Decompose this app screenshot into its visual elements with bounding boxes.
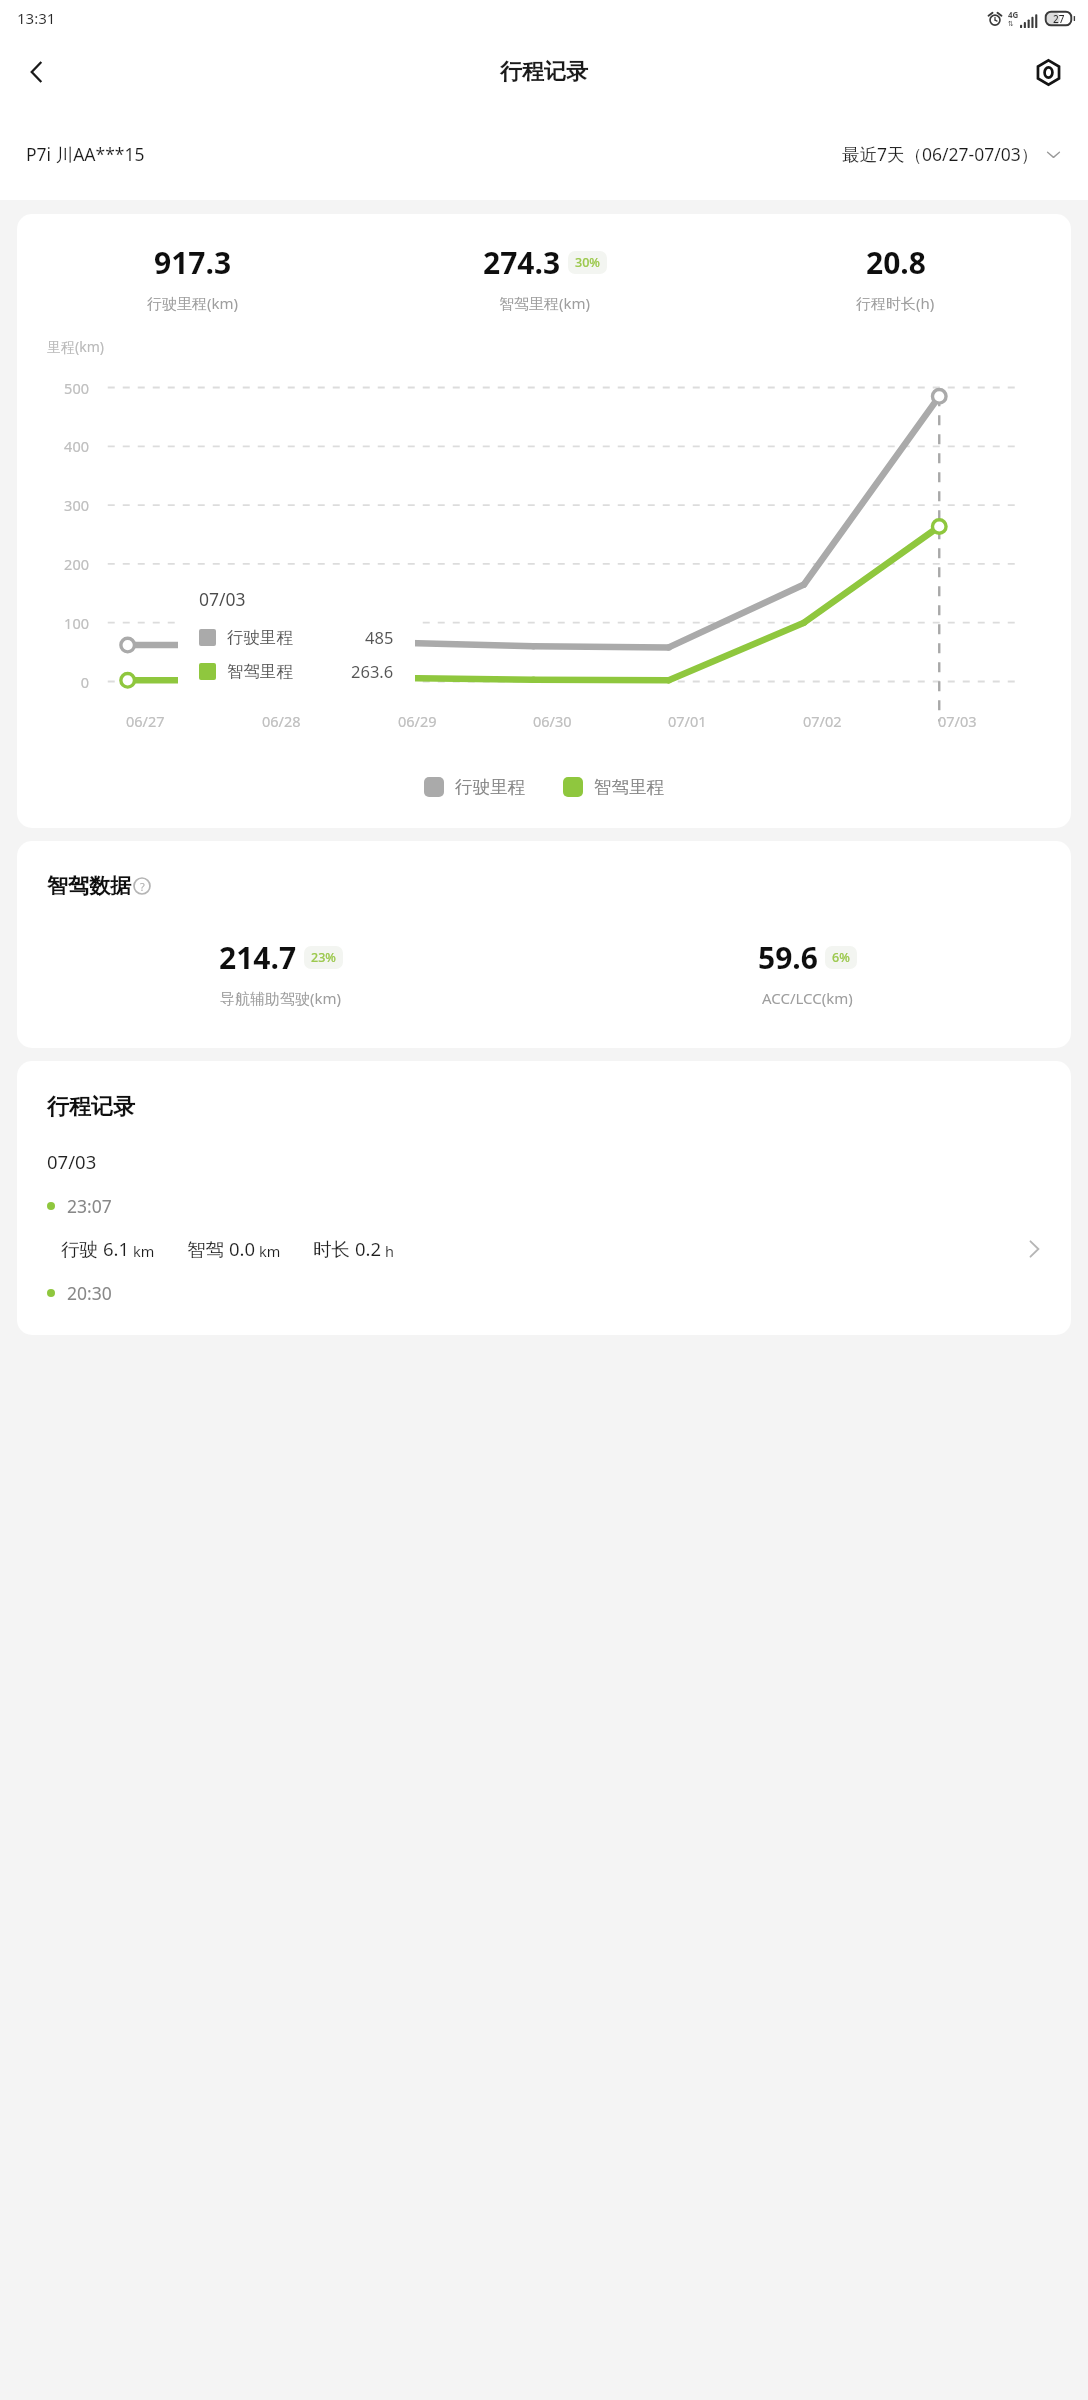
staticText: 20.8: [866, 242, 926, 283]
staticText: 500: [25, 378, 89, 398]
staticText: 07/02: [803, 711, 842, 731]
staticText: 06/30: [533, 711, 572, 731]
staticText: 300: [25, 495, 89, 515]
button[interactable]: Back: [8, 43, 66, 101]
staticText: 214.7: [219, 937, 297, 978]
staticText: 智驾里程(km): [499, 293, 591, 313]
staticText: 行程时长(h): [856, 293, 935, 313]
staticText: 485: [365, 626, 394, 648]
staticText: 07/03: [47, 1149, 97, 1174]
staticText: 274.3: [483, 242, 561, 283]
staticText: 智驾里程: [594, 776, 664, 798]
staticText: 27: [1053, 12, 1065, 26]
staticText: 6.1: [103, 1236, 130, 1261]
staticText: 13:31: [17, 8, 56, 28]
other: Alarm: [988, 12, 1002, 26]
staticText: 行驶里程: [455, 776, 525, 798]
staticText: 智驾数据: [47, 873, 131, 899]
staticText: 30%: [575, 254, 600, 271]
button[interactable]: 智驾里程: [563, 776, 664, 798]
staticText: 行程记录: [500, 58, 588, 86]
staticText: 200: [25, 554, 89, 574]
staticText: 06/28: [262, 711, 301, 731]
button[interactable]: 最近7天（06/27-07/03）: [842, 142, 1062, 166]
staticText: ACC/LCC(km): [762, 988, 853, 1008]
staticText: 23:07: [67, 1194, 112, 1218]
staticText: 行驶里程: [227, 627, 293, 648]
staticText: 400: [25, 436, 89, 456]
staticText: 0.2: [355, 1236, 382, 1261]
staticText: 智驾里程: [227, 661, 293, 682]
staticText: 行驶: [61, 1238, 98, 1261]
staticText: 07/01: [668, 711, 707, 731]
staticText: h: [385, 1241, 394, 1261]
button[interactable]: 23:07: [17, 1194, 1071, 1261]
staticText: 时长: [313, 1238, 350, 1261]
staticText: 263.6: [351, 660, 394, 682]
staticText: 行驶里程(km): [147, 293, 239, 313]
staticText: 0: [25, 672, 89, 692]
staticText: 导航辅助驾驶(km): [220, 988, 342, 1008]
staticText: 06/29: [398, 711, 437, 731]
staticText: 59.6: [758, 937, 818, 978]
staticText: 智驾: [187, 1238, 224, 1261]
staticText: 23%: [311, 949, 336, 966]
staticText: 100: [25, 613, 89, 633]
staticText: 4G: [1008, 9, 1019, 20]
button[interactable]: P7i 川AA***15: [26, 142, 145, 166]
button[interactable]: Settings: [1020, 44, 1076, 100]
staticText: 行程记录: [47, 1093, 135, 1121]
button[interactable]: 行驶里程: [424, 776, 525, 798]
button[interactable]: 智驾数据: [47, 873, 151, 899]
staticText: 6%: [832, 949, 850, 966]
staticText: 917.3: [154, 242, 232, 283]
button[interactable]: 07/03: [178, 568, 415, 701]
staticText: 最近7天（06/27-07/03）: [842, 142, 1039, 166]
staticText: km: [133, 1241, 155, 1261]
staticText: 06/27: [126, 711, 165, 731]
staticText: ?: [140, 879, 145, 894]
other: Help: [133, 877, 151, 895]
staticText: 07/03: [199, 587, 246, 611]
staticText: 07/03: [938, 711, 977, 731]
staticText: km: [259, 1241, 281, 1261]
staticText: 20:30: [67, 1281, 112, 1305]
staticText: 里程(km): [47, 337, 104, 356]
staticText: ⇅: [1008, 20, 1014, 28]
staticText: 0.0: [229, 1236, 256, 1261]
other: Battery 27%: [1045, 11, 1075, 26]
